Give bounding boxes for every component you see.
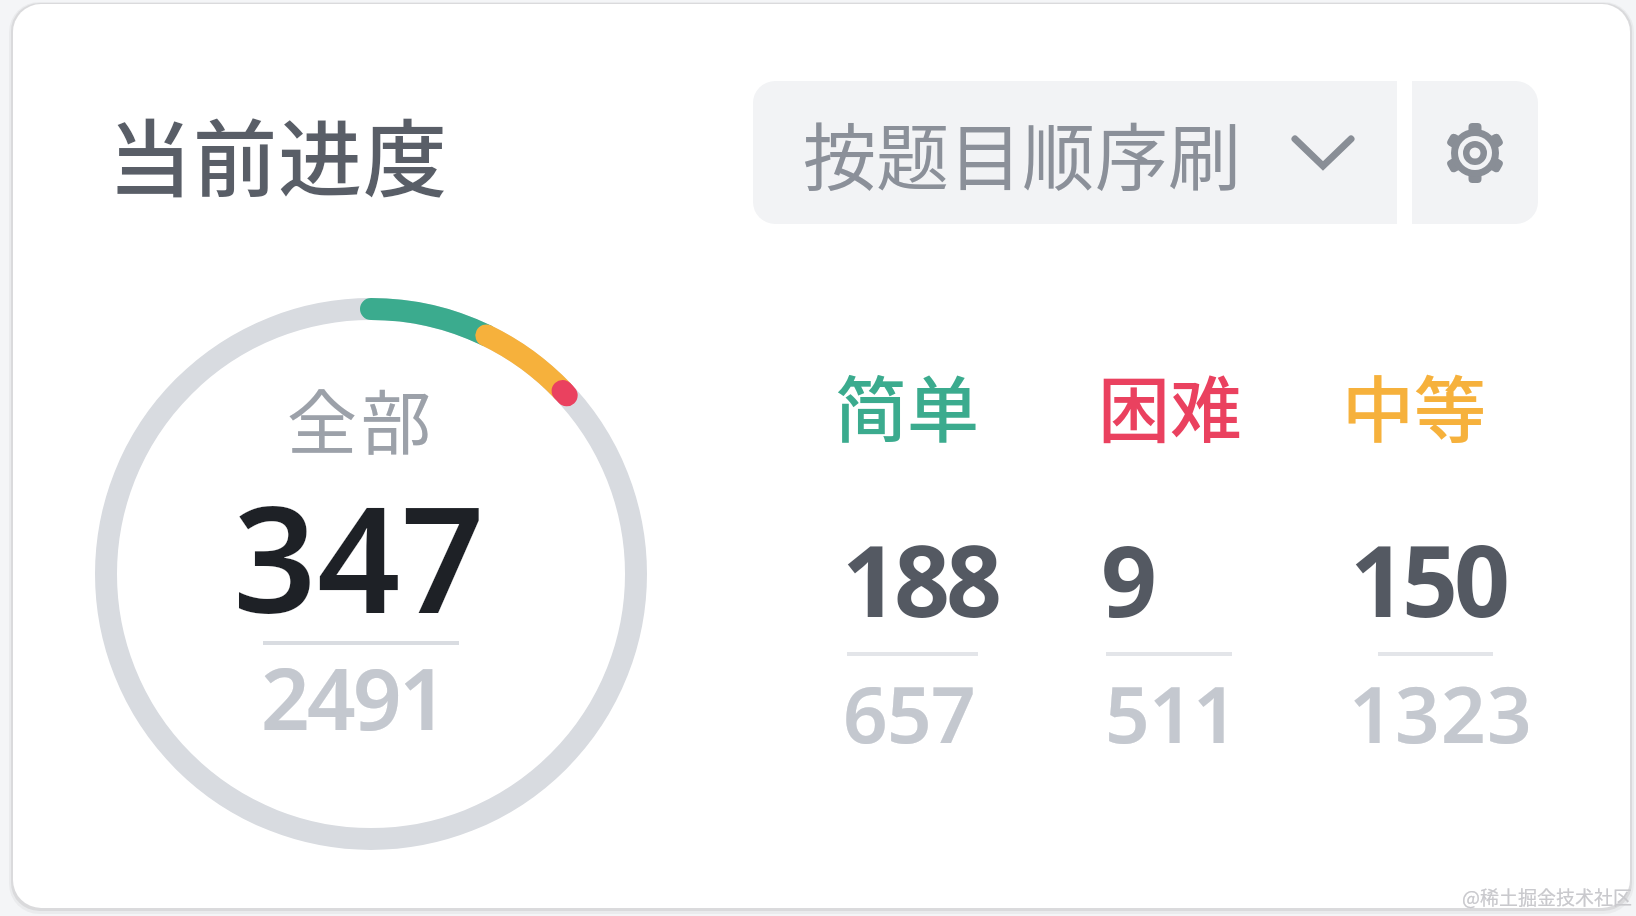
staticText: 1	[842, 512, 899, 645]
staticText: 8	[894, 512, 951, 645]
staticText: 0	[1454, 512, 1511, 645]
button[interactable]	[753, 81, 1397, 224]
staticText: 简单	[835, 352, 980, 456]
staticText: 6	[843, 660, 888, 766]
staticText: 按题目顺序刷	[803, 99, 1241, 205]
staticText: 1	[1350, 512, 1407, 645]
staticText: 1	[1149, 660, 1194, 766]
staticText: 1	[1349, 660, 1394, 766]
staticText: 4	[317, 457, 401, 656]
staticText: 8	[946, 512, 1003, 645]
staticText: 3	[233, 457, 317, 656]
staticText: 9	[1101, 512, 1158, 645]
staticText: 7	[931, 660, 976, 766]
staticText: 当前进度	[108, 93, 449, 215]
staticText: 5	[1402, 512, 1459, 645]
staticText: 4	[307, 639, 356, 755]
staticText: 1	[1193, 660, 1238, 766]
staticText: 1	[399, 639, 448, 755]
staticText: 2	[1441, 660, 1486, 766]
staticText: 9	[353, 639, 402, 755]
staticText: 困难	[1098, 352, 1243, 456]
staticText: 7	[401, 457, 485, 656]
staticText: 5	[1105, 660, 1150, 766]
staticText: 中等	[1342, 352, 1487, 456]
staticText: 2	[261, 639, 310, 755]
staticText: @稀土掘金技术社区	[1462, 883, 1632, 911]
button[interactable]	[1412, 81, 1538, 224]
staticText: 3	[1487, 660, 1532, 766]
staticText: 3	[1395, 660, 1440, 766]
staticText: 全部	[287, 368, 435, 469]
staticText: 5	[887, 660, 932, 766]
